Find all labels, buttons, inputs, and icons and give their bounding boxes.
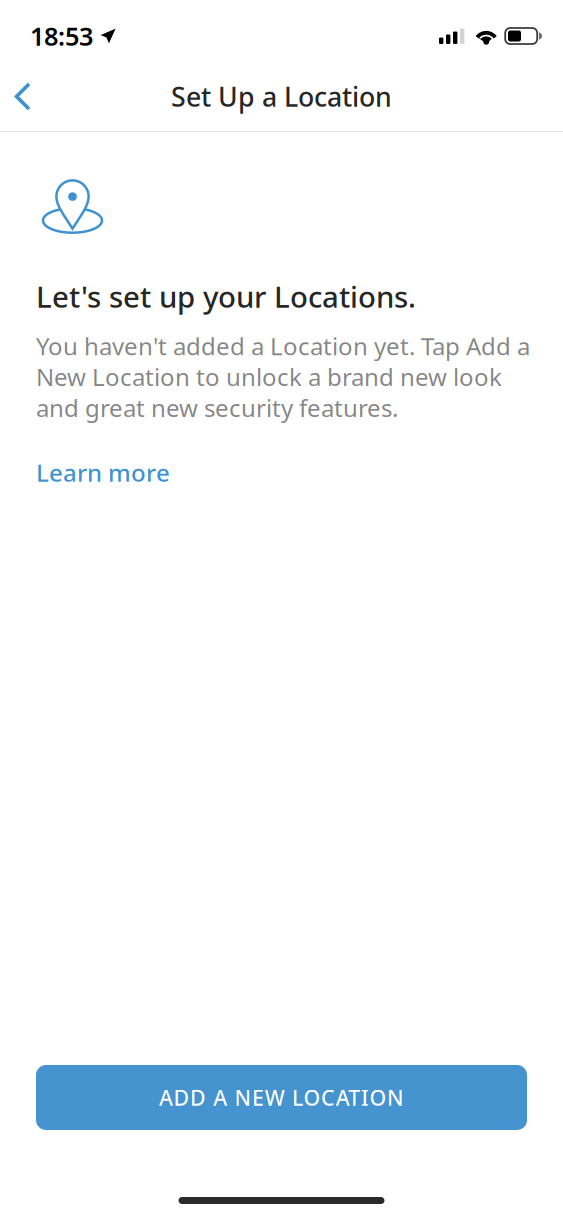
staticText: and great new security features. bbox=[36, 392, 398, 424]
staticText: Learn more bbox=[36, 457, 170, 488]
staticText: 18:53 bbox=[30, 19, 93, 53]
staticText: You haven't added a Location yet. Tap Ad… bbox=[36, 330, 530, 362]
button[interactable]: Learn more bbox=[36, 447, 170, 498]
button[interactable]: Back bbox=[0, 66, 49, 127]
staticText: Set Up a Location bbox=[171, 79, 392, 114]
staticText: ADD A NEW LOCATION bbox=[159, 1083, 404, 1112]
staticText: New Location to unlock a brand new look bbox=[36, 361, 502, 393]
button[interactable]: ADD A NEW LOCATION bbox=[36, 1065, 527, 1130]
staticText: Let's set up your Locations. bbox=[36, 277, 416, 316]
